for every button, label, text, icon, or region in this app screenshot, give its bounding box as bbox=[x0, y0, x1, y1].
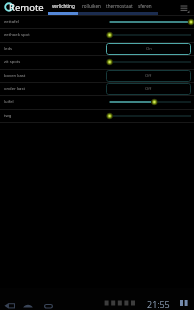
button[interactable]: eethoek spot bbox=[0, 29, 194, 41]
button[interactable] bbox=[105, 96, 194, 108]
staticText: On bbox=[146, 46, 152, 52]
button[interactable]: boven kast bbox=[0, 70, 194, 82]
staticText: Off bbox=[145, 73, 152, 79]
staticText: boven kast bbox=[4, 73, 105, 79]
staticText: sferen bbox=[138, 3, 152, 9]
button[interactable]: onder kast bbox=[0, 83, 194, 95]
button[interactable] bbox=[104, 0, 136, 15]
button[interactable]: leds bbox=[0, 43, 194, 55]
button[interactable]: twg bbox=[0, 110, 194, 122]
staticText: Remote bbox=[9, 1, 44, 14]
button[interactable] bbox=[105, 29, 194, 41]
button[interactable]: Recent apps bbox=[44, 299, 53, 310]
staticText: twg bbox=[4, 113, 105, 119]
button[interactable]: Home bbox=[23, 299, 33, 310]
button[interactable]: Back bbox=[4, 299, 15, 310]
staticText: thermostaat bbox=[106, 3, 133, 9]
staticText: Off bbox=[145, 86, 152, 92]
button[interactable]: eettafel bbox=[0, 16, 194, 28]
button[interactable] bbox=[105, 56, 194, 68]
button[interactable] bbox=[136, 0, 158, 15]
button[interactable] bbox=[105, 110, 194, 122]
button[interactable]: zit spots bbox=[0, 56, 194, 68]
button[interactable]: Off bbox=[106, 83, 191, 95]
staticText: onder kast bbox=[4, 86, 105, 92]
button[interactable] bbox=[48, 0, 78, 15]
staticText: zit spots bbox=[4, 59, 105, 65]
staticText: eethoek spot bbox=[4, 32, 105, 38]
button[interactable]: Menu bbox=[179, 3, 190, 14]
button[interactable] bbox=[78, 0, 104, 15]
button[interactable] bbox=[105, 16, 194, 28]
staticText: luifel bbox=[4, 99, 105, 105]
staticText: eettafel bbox=[4, 19, 105, 25]
button[interactable]: On bbox=[106, 43, 191, 55]
button[interactable]: luifel bbox=[0, 96, 194, 108]
staticText: rolluiken bbox=[82, 3, 101, 9]
staticText: leds bbox=[4, 46, 105, 52]
button[interactable]: Off bbox=[106, 70, 191, 82]
staticText: 21:55 bbox=[147, 298, 170, 310]
staticText: verlichting bbox=[52, 3, 75, 9]
